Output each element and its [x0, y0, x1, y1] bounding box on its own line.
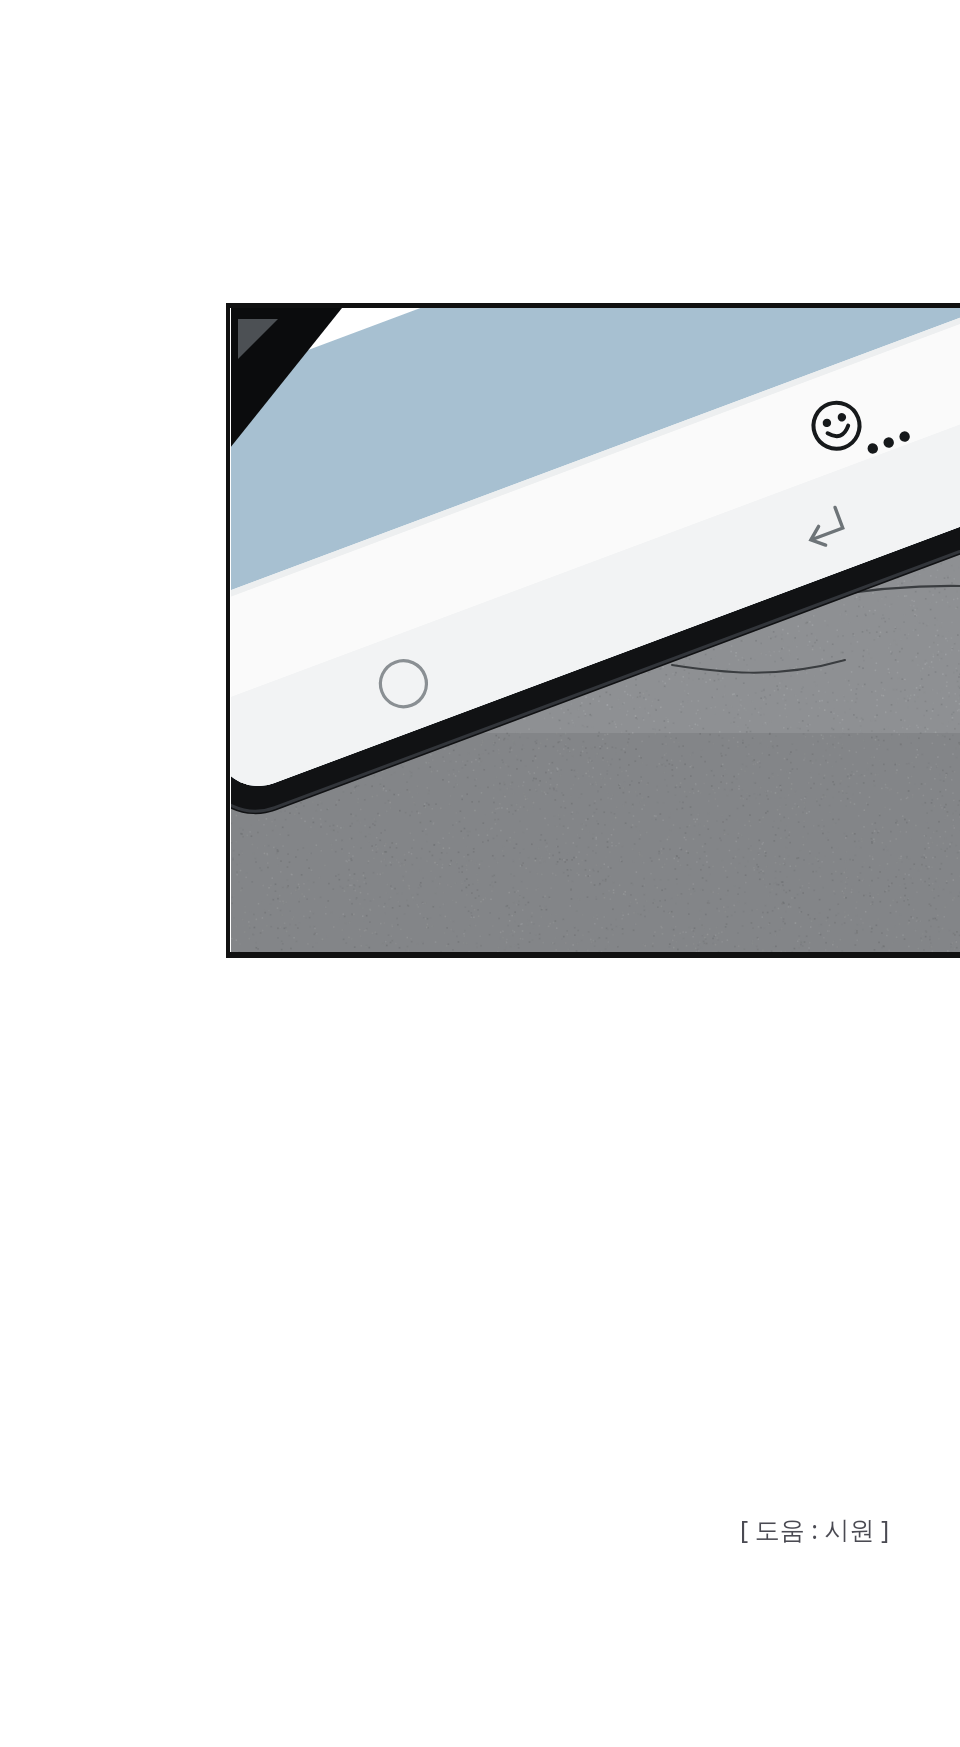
button[interactable]: Webtoon panel: photo of phone chat — [0, 0, 960, 1747]
